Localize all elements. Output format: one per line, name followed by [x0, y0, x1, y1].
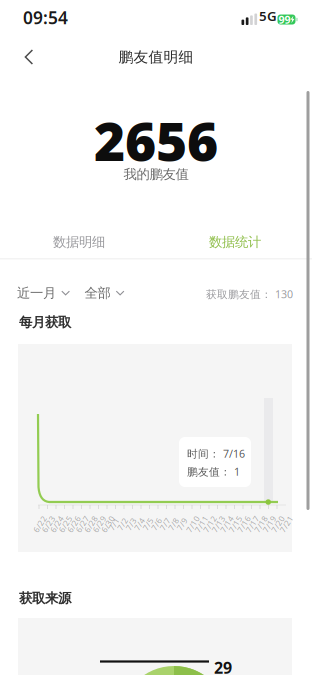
staticText: 7/17: [243, 519, 261, 529]
staticText: 7/12: [201, 519, 219, 529]
button[interactable]: Back: [12, 41, 46, 73]
staticText: 6/25: [56, 519, 74, 529]
staticText: 7/9: [175, 519, 188, 529]
staticText: 2656: [94, 105, 218, 176]
staticText: 7/11: [192, 519, 210, 529]
staticText: 7/18: [252, 519, 270, 529]
staticText: 7/16: [235, 519, 253, 529]
staticText: 7/8: [167, 519, 180, 529]
staticText: 6/29: [90, 519, 108, 529]
staticText: 数据统计: [209, 234, 261, 250]
staticText: 7/19: [260, 519, 278, 529]
staticText: 7/15: [226, 519, 244, 529]
staticText: 29: [214, 657, 232, 675]
staticText: 7/14: [218, 519, 236, 529]
staticText: 6/23: [39, 519, 57, 529]
button[interactable]: 近一月: [17, 286, 70, 300]
staticText: 5G: [259, 7, 277, 25]
staticText: 6/26: [65, 519, 83, 529]
staticText: 7/10: [184, 519, 202, 529]
staticText: 09:54: [23, 6, 68, 29]
staticText: 我的鹏友值: [123, 166, 188, 182]
staticText: 7/3: [124, 519, 137, 529]
staticText: 时间： 7/16: [187, 446, 245, 461]
staticText: 6/28: [82, 519, 100, 529]
staticText: 7/21: [277, 519, 295, 529]
staticText: 6/30: [99, 519, 117, 529]
staticText: 7/4: [133, 519, 146, 529]
staticText: 每月获取: [19, 314, 71, 330]
staticText: 获取来源: [19, 590, 71, 606]
staticText: 鹏友值明细: [118, 48, 193, 66]
staticText: 7/6: [150, 519, 163, 529]
staticText: 7/20: [269, 519, 287, 529]
staticText: 99: [278, 12, 290, 27]
staticText: 6/22: [31, 519, 49, 529]
button[interactable]: 数据统计: [158, 234, 312, 250]
staticText: 获取鹏友值： 130: [206, 287, 293, 301]
button[interactable]: 全部: [84, 286, 125, 300]
staticText: 7/2: [116, 519, 129, 529]
staticText: 6/24: [48, 519, 66, 529]
staticText: 6/27: [73, 519, 91, 529]
staticText: 近一月: [17, 285, 56, 301]
staticText: 全部: [84, 285, 110, 301]
staticText: 7/1: [107, 519, 120, 529]
button[interactable]: 数据明细: [0, 234, 158, 250]
staticText: 数据明细: [53, 234, 105, 250]
staticText: 7/5: [141, 519, 154, 529]
staticText: 鹏友值： 1: [187, 464, 240, 479]
staticText: 7/7: [158, 519, 171, 529]
staticText: 7/13: [209, 519, 227, 529]
